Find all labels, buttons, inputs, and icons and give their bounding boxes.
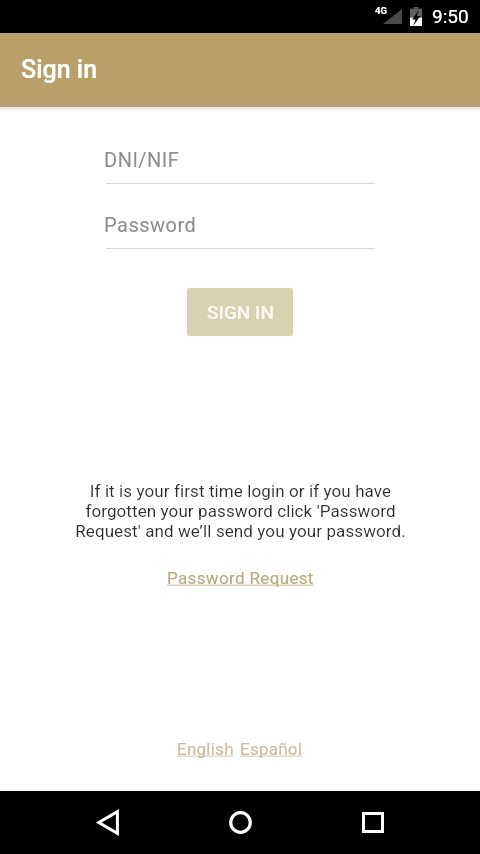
button[interactable]: Back: [84, 798, 132, 846]
staticText: 9:50: [432, 5, 469, 27]
staticText: 4G: [375, 5, 387, 16]
staticText: If it is your first time login or if you…: [68, 481, 413, 541]
staticText: English: [177, 739, 234, 759]
staticText: Password: [104, 213, 197, 236]
button[interactable]: SIGN IN: [187, 288, 293, 336]
staticText: Sign in: [21, 55, 98, 84]
staticText: DNI/NIF: [104, 148, 180, 171]
staticText: Password Request: [167, 568, 314, 588]
button[interactable]: Recent apps: [349, 798, 397, 846]
button[interactable]: Home: [216, 798, 264, 846]
button[interactable]: Password: [106, 205, 375, 249]
button[interactable]: Español: [238, 736, 305, 762]
staticText: SIGN IN: [207, 301, 274, 323]
button[interactable]: Password Request: [161, 565, 320, 591]
staticText: Español: [240, 739, 303, 759]
button[interactable]: English: [175, 736, 236, 762]
button[interactable]: DNI/NIF: [106, 140, 375, 184]
